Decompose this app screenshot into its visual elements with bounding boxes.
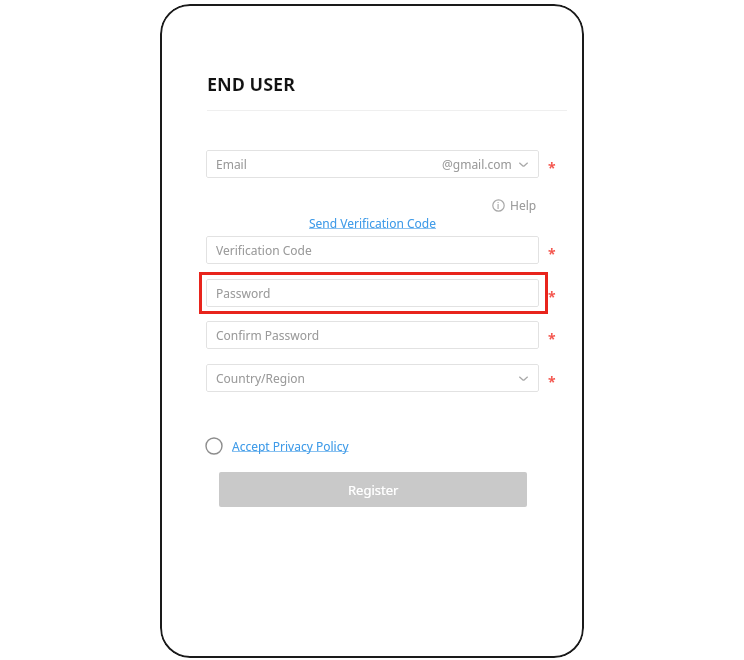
staticText: Country/Region [216, 370, 305, 386]
staticText: * [548, 372, 556, 391]
staticText: Email [216, 156, 247, 172]
staticText: * [548, 287, 556, 306]
staticText: END USER [207, 72, 295, 97]
button[interactable]: Help [492, 197, 537, 213]
staticText: Confirm Password [216, 327, 320, 343]
button[interactable]: Country/Region [206, 364, 539, 392]
other: Help [492, 199, 505, 212]
staticText: * [548, 158, 556, 177]
staticText: * [548, 329, 556, 348]
staticText: Verification Code [216, 242, 312, 258]
staticText: Password [216, 285, 271, 301]
staticText: @gmail.com [442, 156, 512, 172]
button[interactable]: Accept Privacy Policy [203, 435, 349, 457]
button[interactable]: Email [206, 150, 539, 178]
button[interactable]: Verification Code [206, 236, 539, 264]
button[interactable]: Register [219, 472, 527, 507]
staticText: Help [510, 197, 537, 213]
staticText: * [548, 244, 556, 263]
staticText: Send Verification Code [309, 215, 436, 231]
staticText: Accept Privacy Policy [232, 438, 349, 454]
staticText: i [497, 200, 500, 211]
button[interactable]: Password [206, 279, 539, 307]
staticText: Register [348, 481, 399, 499]
button[interactable]: END USER [207, 72, 295, 97]
button[interactable]: Confirm Password [206, 321, 539, 349]
button[interactable]: Send Verification Code [206, 215, 539, 231]
